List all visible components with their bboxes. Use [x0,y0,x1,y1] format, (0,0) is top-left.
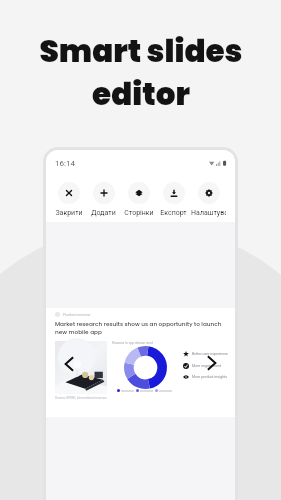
staticText: editor [92,72,190,115]
staticText: Smart slides [39,29,243,72]
staticText: Експорт [160,209,187,217]
staticText: 16:14 [55,159,75,168]
staticText: Закрити [55,209,83,217]
staticText: Source: KPMG, international sources [55,396,107,400]
staticText: Сторінки [124,209,154,217]
button[interactable]: Додати [86,182,121,217]
button[interactable]: Сторінки [121,182,156,217]
button[interactable]: Previous slide [65,358,73,370]
staticText: Налаштування [191,209,226,217]
staticText: Reasons to app release need [112,341,153,345]
staticText: Product overview [63,313,91,317]
button[interactable]: Закрити [51,182,86,217]
staticText: More engagement [192,364,222,368]
staticText: Додати [91,209,116,217]
button[interactable]: Налаштування [191,182,226,217]
staticText: Market research results show us an oppor… [55,320,222,336]
button[interactable]: Next slide [208,357,216,369]
button[interactable]: Експорт [156,182,191,217]
staticText: Better user experience [192,352,228,356]
staticText: More product insights [192,375,227,379]
